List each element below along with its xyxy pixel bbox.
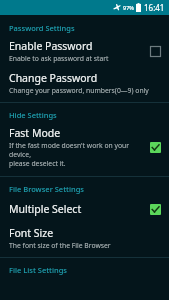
staticText: Change Password bbox=[9, 71, 98, 85]
staticText: Hide Settings bbox=[9, 110, 169, 120]
staticText: File Browser Settings bbox=[9, 184, 169, 194]
staticText: Multiple Select bbox=[9, 202, 82, 216]
staticText: The font size of the File Browser bbox=[9, 241, 111, 250]
button[interactable]: Fast Mode bbox=[0, 122, 169, 176]
button[interactable]: Enable Password bbox=[0, 35, 169, 69]
button[interactable]: Multiple Select bbox=[0, 196, 169, 223]
staticText: Password Settings bbox=[9, 23, 169, 33]
staticText: Font Size bbox=[9, 226, 54, 240]
staticText: If the fast mode doesn't work on your de… bbox=[9, 141, 143, 168]
staticText: 97% bbox=[123, 4, 134, 11]
staticText: 16:41 bbox=[144, 2, 165, 13]
staticText: Enable to ask password at start bbox=[9, 54, 109, 63]
button[interactable]: Change Password bbox=[0, 69, 169, 102]
staticText: Fast Mode bbox=[9, 126, 61, 140]
staticText: Change your password, numbers(0—9) only bbox=[9, 86, 149, 95]
staticText: File List Settings bbox=[9, 265, 169, 275]
button[interactable]: Font Size bbox=[0, 223, 169, 257]
staticText: Enable Password bbox=[9, 39, 93, 53]
